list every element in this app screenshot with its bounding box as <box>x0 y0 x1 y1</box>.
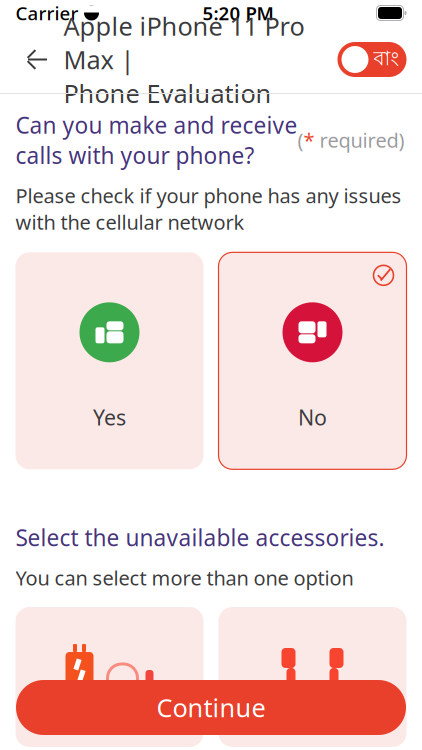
button[interactable]: Charger <box>15 607 203 747</box>
button[interactable]: Earphones <box>218 607 406 747</box>
staticText: Yes <box>93 403 126 431</box>
staticText: বাং <box>373 46 399 73</box>
button[interactable]: Continue <box>16 680 406 735</box>
staticText: Carrier <box>15 1 78 25</box>
button[interactable]: Yes <box>15 252 203 469</box>
staticText: required) <box>314 127 404 153</box>
staticText: You can select more than one option <box>15 564 353 591</box>
staticText: Can you make and receive calls with your… <box>15 110 297 170</box>
button[interactable]: Switch language to Bangla <box>337 42 406 77</box>
button[interactable]: No <box>218 252 406 469</box>
staticText: Select the unavailable accessories. <box>15 522 384 552</box>
staticText: Apple iPhone 11 Pro Max | Phone Evaluati… <box>63 9 304 110</box>
staticText: 5:20 PM <box>202 1 273 25</box>
button[interactable]: Back <box>15 34 59 84</box>
staticText: No <box>298 403 327 431</box>
staticText: ( <box>297 127 303 153</box>
staticText: Continue <box>156 691 265 724</box>
staticText: Please check if your phone has any issue… <box>15 182 401 235</box>
staticText: * <box>303 127 314 153</box>
